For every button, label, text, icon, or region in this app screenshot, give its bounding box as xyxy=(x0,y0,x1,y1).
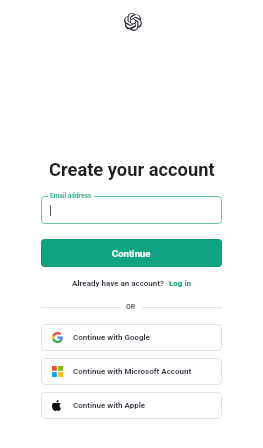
button[interactable]: Log in xyxy=(169,279,192,288)
other: OpenAI xyxy=(124,13,142,31)
button[interactable]: Continue xyxy=(41,239,222,267)
staticText: Continue with Microsoft Account xyxy=(73,367,192,376)
staticText: OR xyxy=(126,303,136,311)
staticText: Log in xyxy=(169,279,192,288)
staticText: Create your account xyxy=(49,159,215,180)
staticText: Already have an account? xyxy=(72,279,165,288)
button[interactable]: Continue with Google xyxy=(41,324,222,351)
button[interactable]: Continue with Microsoft Account xyxy=(41,358,222,385)
staticText: Continue xyxy=(112,248,151,259)
staticText: Email address xyxy=(50,192,92,200)
button[interactable]: Continue with Apple xyxy=(41,392,222,419)
staticText: Continue with Google xyxy=(73,333,150,342)
staticText: Continue with Apple xyxy=(73,401,146,410)
button[interactable] xyxy=(41,196,222,224)
